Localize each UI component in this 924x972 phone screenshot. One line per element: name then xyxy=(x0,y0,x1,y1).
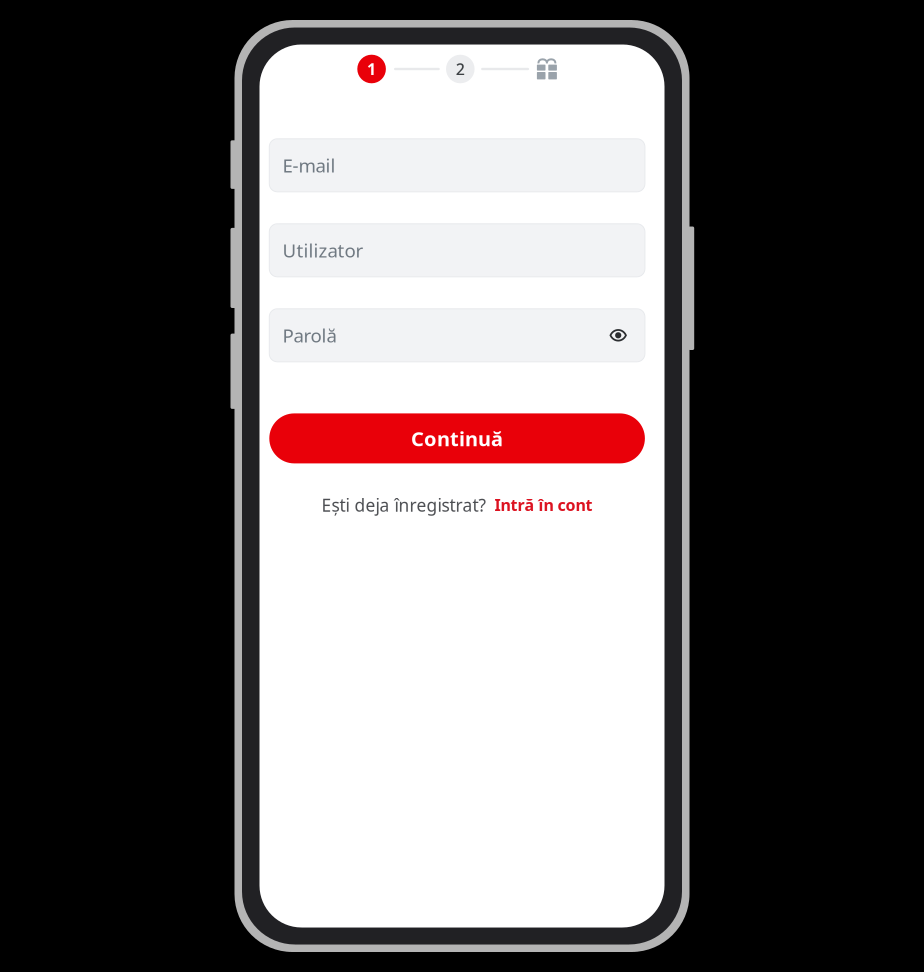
staticText: E-mail xyxy=(282,153,335,178)
staticText: 1 xyxy=(367,58,376,80)
staticText: Continuă xyxy=(411,425,503,452)
staticText: Intră în cont xyxy=(495,494,593,515)
staticText: Parolă xyxy=(282,323,336,348)
button[interactable]: Continuă xyxy=(269,413,645,463)
staticText: Ești deja înregistrat? xyxy=(322,493,487,516)
button[interactable]: Show password xyxy=(601,318,635,352)
button[interactable]: Utilizator xyxy=(269,224,645,277)
staticText: Utilizator xyxy=(282,238,363,263)
button[interactable]: E-mail xyxy=(269,139,645,192)
button[interactable]: Intră în cont xyxy=(495,494,593,515)
button[interactable]: Parolă xyxy=(269,309,645,362)
staticText: 2 xyxy=(456,58,465,80)
